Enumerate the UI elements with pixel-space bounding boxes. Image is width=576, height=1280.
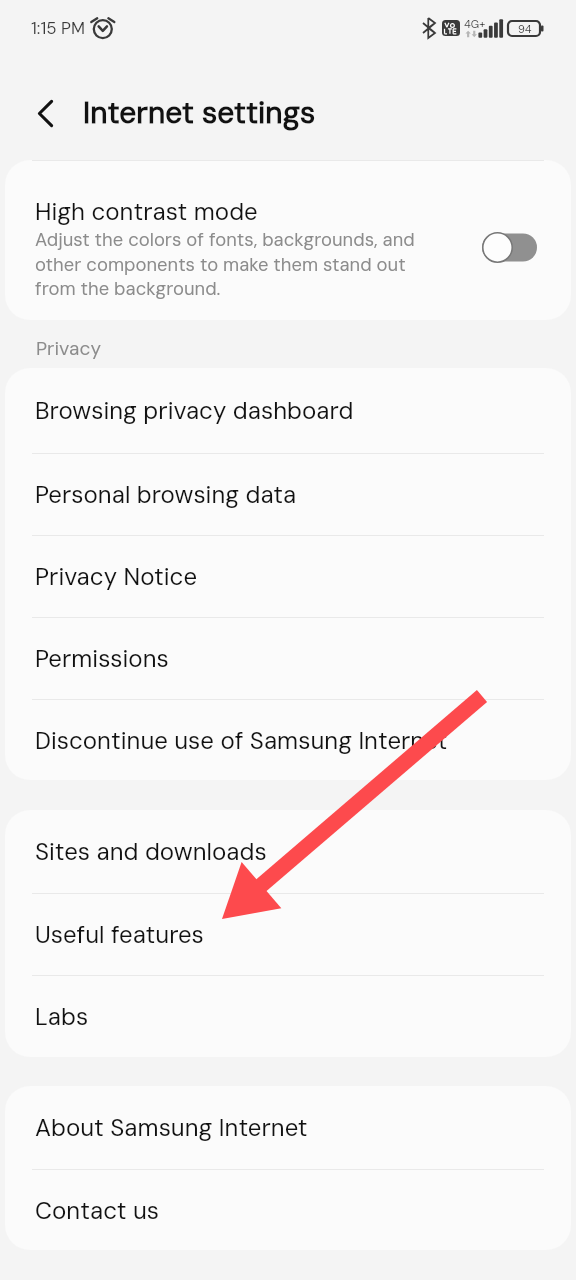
button[interactable]: Personal browsing data [5, 454, 571, 535]
button[interactable]: Contact us [5, 1170, 571, 1250]
staticText: 1:15 PM [31, 17, 86, 39]
staticText: Personal browsing data [35, 479, 297, 510]
staticText: Browsing privacy dashboard [35, 395, 354, 426]
staticText: Internet settings [83, 93, 316, 132]
staticText: 4G+ [464, 17, 486, 31]
staticText: High contrast mode [35, 196, 258, 227]
button[interactable]: High contrast mode [482, 232, 537, 263]
staticText: Adjust the colors of fonts, backgrounds,… [35, 228, 415, 300]
button[interactable]: Privacy Notice [5, 536, 571, 617]
button[interactable]: High contrast mode [5, 161, 571, 320]
staticText: Sites and downloads [35, 836, 267, 867]
button[interactable]: Discontinue use of Samsung Internet [5, 700, 571, 780]
button[interactable]: Navigate up [25, 93, 65, 133]
staticText: Privacy [36, 336, 101, 361]
button[interactable]: Permissions [5, 618, 571, 699]
button[interactable]: Browsing privacy dashboard [5, 368, 571, 453]
button[interactable]: Sites and downloads [5, 810, 571, 893]
button[interactable]: Useful features [5, 894, 571, 975]
staticText: Permissions [35, 643, 169, 674]
staticText: Labs [35, 1001, 89, 1032]
staticText: About Samsung Internet [35, 1112, 308, 1143]
staticText: Discontinue use of Samsung Internet [35, 725, 448, 756]
button[interactable]: Labs [5, 976, 571, 1057]
staticText: Privacy Notice [35, 561, 197, 592]
button[interactable]: About Samsung Internet [5, 1086, 571, 1169]
staticText: Contact us [35, 1195, 159, 1226]
staticText: 94 [518, 22, 532, 36]
staticText: Useful features [35, 919, 204, 950]
